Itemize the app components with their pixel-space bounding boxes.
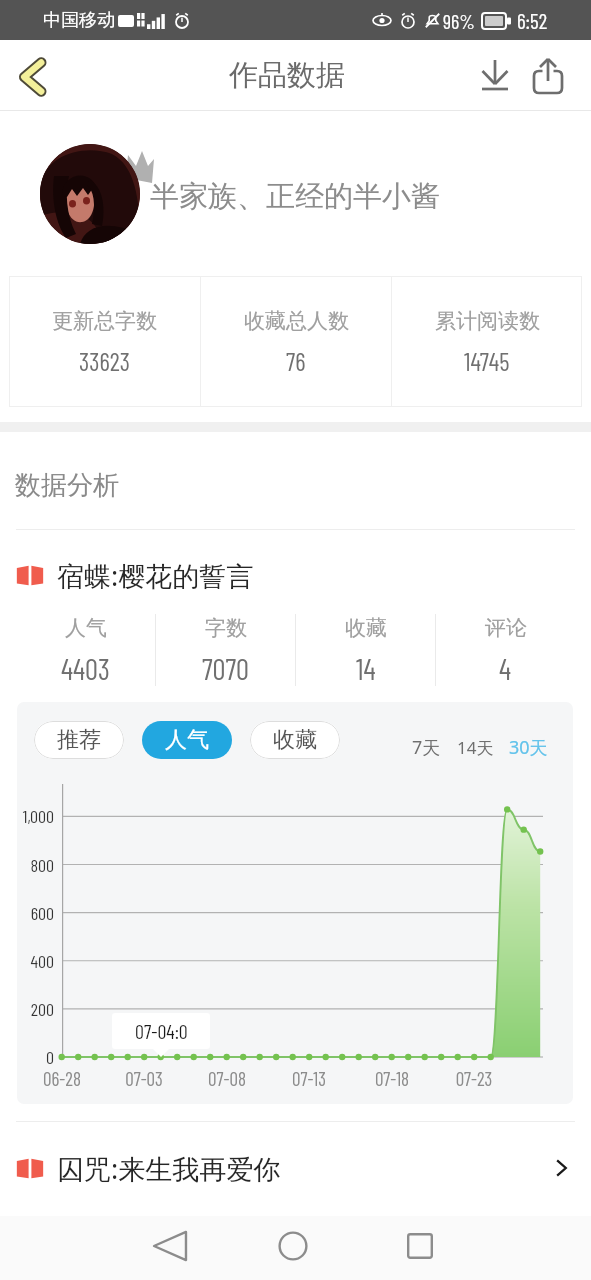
staticText: 7天 [412, 735, 441, 760]
staticText: 600 [17, 902, 54, 924]
staticText: 6:52 [517, 8, 548, 33]
staticText: 30天 [509, 735, 548, 760]
button[interactable]: 7天 [407, 728, 446, 767]
button[interactable]: 更新总字数 [9, 276, 200, 407]
button[interactable]: Back [0, 45, 62, 107]
staticText: 14天 [457, 736, 494, 759]
button[interactable]: Recents [388, 1214, 452, 1278]
button[interactable]: 收藏 [250, 721, 340, 759]
staticText: 4 [499, 651, 512, 686]
staticText: 宿蝶:樱花的誓言 [57, 557, 254, 594]
staticText: 人气 [65, 615, 107, 641]
staticText: 数据分析 [15, 469, 119, 502]
staticText: 7070 [202, 651, 249, 686]
button[interactable]: 14天 [452, 729, 499, 766]
button[interactable]: 囚咒:来生我再爱你 [16, 1140, 573, 1196]
button[interactable]: 收藏 [296, 609, 435, 691]
staticText: 07-18 [362, 1067, 422, 1090]
staticText: 评论 [485, 615, 527, 641]
button[interactable]: 字数 [156, 609, 295, 691]
staticText: 33623 [79, 346, 130, 376]
staticText: 4403 [61, 651, 110, 686]
staticText: 人气 [165, 726, 209, 754]
button[interactable]: 收藏总人数 [201, 276, 391, 407]
staticText: 07-08 [197, 1067, 257, 1090]
button[interactable]: 评论 [436, 609, 575, 691]
staticText: 更新总字数 [52, 308, 157, 334]
button[interactable]: 30天 [504, 728, 553, 767]
staticText: 作品数据 [229, 57, 345, 94]
staticText: 07-03 [114, 1067, 174, 1090]
button[interactable]: Share [521, 49, 575, 103]
button[interactable]: Back [138, 1214, 202, 1278]
staticText: 收藏总人数 [244, 308, 349, 334]
staticText: 囚咒:来生我再爱你 [57, 1150, 281, 1187]
staticText: 收藏 [273, 726, 317, 754]
staticText: 14745 [464, 346, 510, 376]
button[interactable]: 宿蝶:樱花的誓言 [16, 549, 591, 601]
button[interactable]: 累计阅读数 [392, 276, 582, 407]
staticText: 400 [17, 950, 54, 972]
staticText: 中国移动 [43, 9, 115, 32]
button[interactable]: 推荐 [34, 721, 124, 759]
staticText: 200 [17, 998, 54, 1020]
staticText: 800 [17, 854, 54, 876]
staticText: 累计阅读数 [435, 308, 540, 334]
staticText: 推荐 [57, 726, 101, 754]
button[interactable]: 人气 [142, 721, 232, 759]
staticText: 半家族、正经的半小酱 [150, 178, 440, 215]
staticText: 96% [443, 9, 475, 33]
staticText: 0 [17, 1046, 54, 1068]
staticText: 07-04:0 [135, 1019, 188, 1043]
staticText: 06-28 [32, 1067, 92, 1090]
button[interactable]: 人气 [16, 609, 155, 691]
staticText: 76 [286, 346, 306, 376]
button[interactable]: Home [261, 1214, 325, 1278]
staticText: 14 [356, 651, 376, 686]
staticText: 07-23 [444, 1067, 504, 1090]
staticText: 1,000 [17, 805, 54, 827]
button[interactable]: Download [468, 49, 522, 103]
staticText: 字数 [205, 615, 247, 641]
staticText: 收藏 [345, 615, 387, 641]
staticText: 07-13 [279, 1067, 339, 1090]
